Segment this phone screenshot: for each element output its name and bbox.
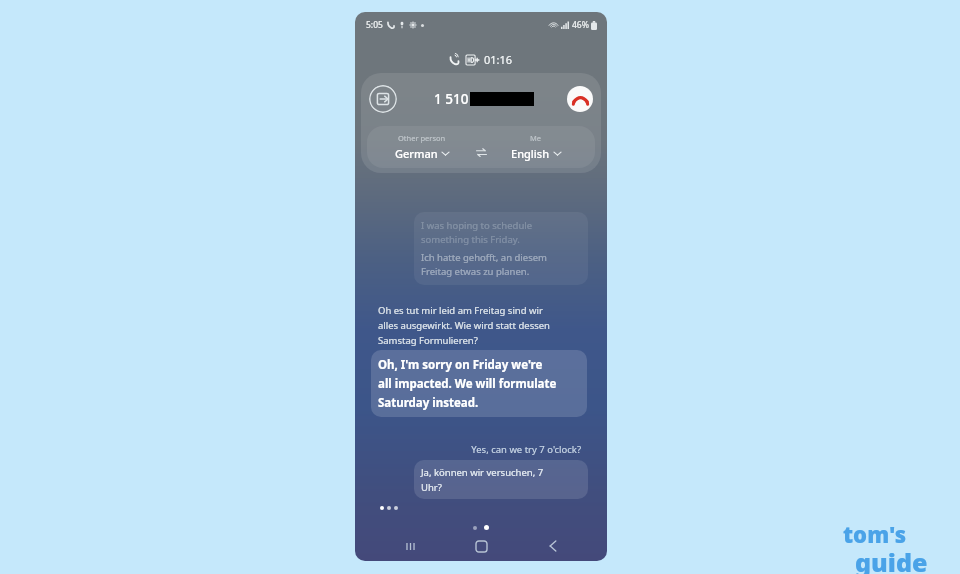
button[interactable]: Recent apps <box>393 531 427 561</box>
staticText: Oh, I'm sorry on Friday we're all impact… <box>378 357 557 410</box>
button[interactable]: Back <box>536 531 570 561</box>
button[interactable]: Swap languages <box>471 142 491 162</box>
staticText: Me <box>530 133 542 143</box>
staticText: guide <box>855 545 928 574</box>
staticText: tom's <box>843 519 907 549</box>
staticText: German <box>395 146 438 161</box>
staticText: 46% <box>572 19 589 31</box>
staticText: I was hoping to schedule something this … <box>421 219 533 246</box>
button[interactable]: Me <box>507 131 565 163</box>
staticText: 1 510 <box>434 90 469 108</box>
button[interactable]: End call <box>567 86 593 112</box>
button[interactable]: I was hoping to schedule something this … <box>414 212 588 285</box>
staticText: Oh es tut mir leid am Freitag sind wir a… <box>378 304 550 346</box>
staticText: Ja, können wir versuchen, 7 Uhr? <box>421 466 544 493</box>
staticText: Other person <box>398 133 446 143</box>
button[interactable]: Yes, can we try 7 o'clock? <box>414 443 588 499</box>
button[interactable]: Other person <box>391 131 453 163</box>
staticText: Yes, can we try 7 o'clock? <box>471 443 581 456</box>
staticText: 5:05 <box>366 19 383 31</box>
button[interactable]: Oh es tut mir leid am Freitag sind wir a… <box>371 304 587 417</box>
staticText: 01:16 <box>484 52 513 67</box>
staticText: Ich hatte gehofft, an diesem Freitag etw… <box>421 251 547 278</box>
button[interactable]: Minimize call <box>369 85 397 113</box>
button[interactable]: Home <box>464 531 498 561</box>
staticText: English <box>511 146 550 161</box>
